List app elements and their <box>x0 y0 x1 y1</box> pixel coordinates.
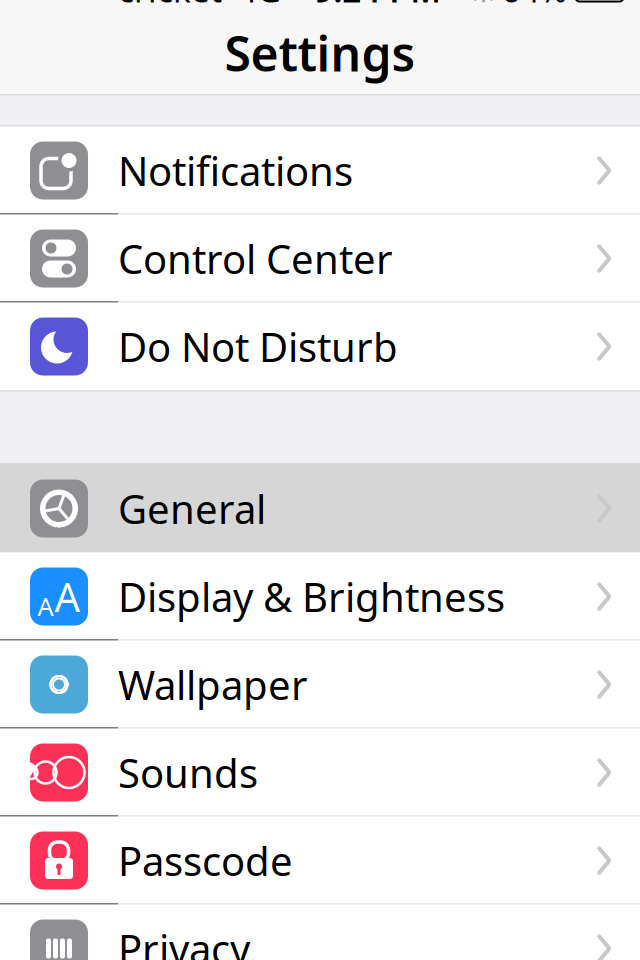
button[interactable]: Passcode <box>0 816 640 904</box>
staticText: Control Center <box>118 232 393 285</box>
button[interactable]: Notifications <box>0 126 640 214</box>
staticText: Passcode <box>118 834 293 887</box>
staticText: A <box>54 570 80 623</box>
button[interactable]: Privacy <box>0 904 640 960</box>
button[interactable]: Do Not Disturb <box>0 302 640 390</box>
staticText: Notifications <box>118 144 353 197</box>
button[interactable]: General <box>0 464 640 552</box>
staticText: Settings <box>224 21 415 85</box>
button[interactable]: Control Center <box>0 214 640 302</box>
button[interactable]: Sounds <box>0 728 640 816</box>
staticText: Do Not Disturb <box>118 320 398 373</box>
staticText: 64% <box>501 0 567 12</box>
staticText: General <box>118 482 266 535</box>
staticText: cricket <box>118 0 222 12</box>
staticText: 4G <box>238 0 281 12</box>
staticText: 9:24 PM <box>314 0 441 12</box>
staticText: A <box>37 589 53 623</box>
staticText: Privacy <box>118 922 250 960</box>
staticText: Sounds <box>118 746 258 799</box>
button[interactable]: Wallpaper <box>0 640 640 728</box>
button[interactable]: A <box>0 552 640 640</box>
staticText: Wallpaper <box>118 658 308 711</box>
staticText: Display & Brightness <box>118 570 505 623</box>
